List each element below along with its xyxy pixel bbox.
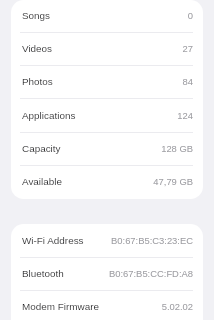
button[interactable]: Available xyxy=(11,166,203,199)
button[interactable]: Applications xyxy=(11,99,203,133)
staticText: Capacity xyxy=(22,143,61,154)
button[interactable]: Modem Firmware xyxy=(11,291,203,320)
button[interactable]: Wi-Fi Address xyxy=(11,224,203,258)
staticText: Available xyxy=(22,176,62,187)
staticText: 5.02.02 xyxy=(103,301,193,312)
staticText: Photos xyxy=(22,76,53,87)
staticText: 124 xyxy=(80,110,193,121)
staticText: 0 xyxy=(55,10,193,21)
staticText: B0:67:B5:CC:FD:A8 xyxy=(68,268,193,279)
staticText: Modem Firmware xyxy=(22,301,99,312)
staticText: 47,79 GB xyxy=(66,176,193,187)
staticText: Bluetooth xyxy=(22,268,64,279)
staticText: B0:67:B5:C3:23:EC xyxy=(88,235,193,246)
button[interactable]: Capacity xyxy=(11,133,203,166)
staticText: 27 xyxy=(57,43,193,54)
staticText: Videos xyxy=(22,43,53,54)
staticText: Applications xyxy=(22,110,76,121)
button[interactable]: Songs xyxy=(11,0,203,33)
staticText: Wi-Fi Address xyxy=(22,235,84,246)
button[interactable]: Videos xyxy=(11,33,203,66)
staticText: 128 GB xyxy=(65,143,193,154)
button[interactable]: Photos xyxy=(11,66,203,99)
button[interactable]: Bluetooth xyxy=(11,258,203,291)
staticText: 84 xyxy=(57,76,193,87)
staticText: Songs xyxy=(22,10,51,21)
